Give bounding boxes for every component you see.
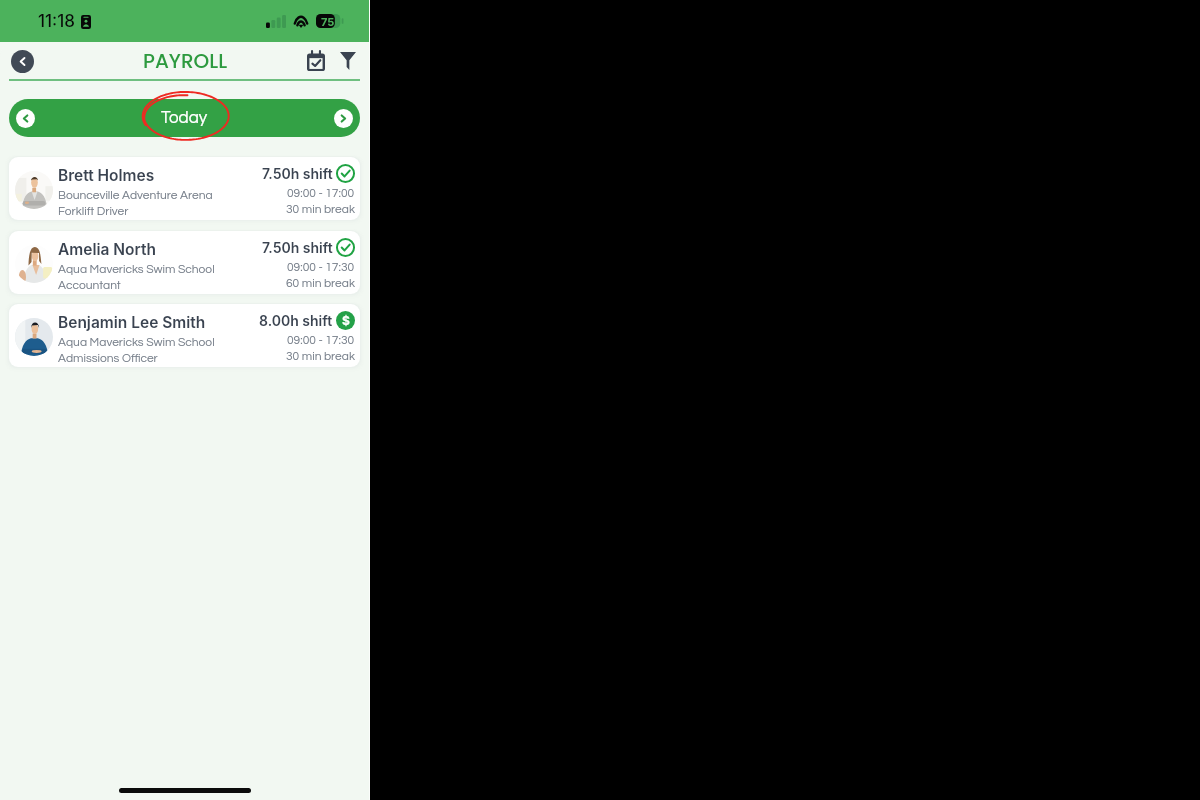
button[interactable]: Filter (338, 51, 358, 71)
staticText: $ (342, 313, 350, 328)
staticText: Amelia North (58, 240, 156, 259)
staticText: Bounceville Adventure Arena (58, 189, 213, 201)
staticText: Brett Holmes (58, 166, 155, 185)
staticText: Aqua Mavericks Swim School (58, 336, 215, 348)
staticText: 8.00h shift (259, 312, 333, 329)
staticText: 7.50h shift (262, 165, 333, 182)
staticText: Accountant (58, 279, 121, 291)
button[interactable]: Amelia North (9, 231, 360, 294)
button[interactable]: Next day (334, 109, 353, 128)
staticText: 30 min break (286, 203, 355, 215)
staticText: 75 (321, 15, 335, 28)
button[interactable]: Previous day (16, 109, 35, 128)
button[interactable]: Brett Holmes (9, 157, 360, 220)
staticText: PAYROLL (143, 47, 228, 75)
button[interactable]: Benjamin Lee Smith (9, 304, 360, 367)
staticText: Benjamin Lee Smith (58, 313, 206, 332)
staticText: 7.50h shift (262, 239, 333, 256)
staticText: 60 min break (286, 277, 355, 289)
staticText: 09:00 - 17:30 (287, 261, 355, 273)
staticText: 30 min break (286, 350, 355, 362)
staticText: Forklift Driver (58, 205, 129, 217)
staticText: Admissions Officer (58, 352, 158, 364)
staticText: 11:18 (38, 11, 76, 32)
button[interactable]: Back (11, 50, 34, 73)
button[interactable]: Calendar (305, 50, 327, 72)
staticText: 09:00 - 17:00 (287, 187, 355, 199)
button[interactable]: Today (161, 109, 208, 127)
staticText: Aqua Mavericks Swim School (58, 263, 215, 275)
staticText: 09:00 - 17:30 (287, 334, 355, 346)
